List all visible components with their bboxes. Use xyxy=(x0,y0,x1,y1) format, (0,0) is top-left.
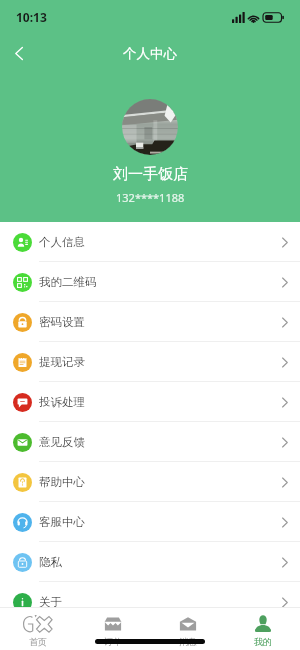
button[interactable]: 帮助中心 xyxy=(0,462,300,502)
staticText: 首页 xyxy=(29,636,47,647)
staticText: 我的 xyxy=(254,636,272,647)
staticText: 提现记录 xyxy=(39,355,85,369)
button[interactable]: 首页 xyxy=(0,607,75,650)
staticText: 关于 xyxy=(39,595,62,609)
button[interactable]: Avatar xyxy=(122,99,178,155)
staticText: 投诉处理 xyxy=(39,395,85,409)
button[interactable]: 我的二维码 xyxy=(0,262,300,302)
button[interactable]: 我的 xyxy=(225,607,300,650)
button[interactable]: 意见反馈 xyxy=(0,422,300,462)
button[interactable]: 投诉处理 xyxy=(0,382,300,422)
button[interactable]: 密码设置 xyxy=(0,302,300,342)
staticText: 个人信息 xyxy=(39,235,85,249)
button[interactable]: Back xyxy=(3,37,35,69)
staticText: 10:13 xyxy=(16,9,47,25)
button[interactable]: 消息 xyxy=(150,607,225,650)
staticText: 订单 xyxy=(104,636,122,647)
staticText: 隐私 xyxy=(39,555,62,569)
button[interactable]: 隐私 xyxy=(0,542,300,582)
staticText: 132****1188 xyxy=(116,190,185,205)
button[interactable]: 客服中心 xyxy=(0,502,300,542)
staticText: 密码设置 xyxy=(39,315,85,329)
staticText: 客服中心 xyxy=(39,515,85,529)
button[interactable]: 提现记录 xyxy=(0,342,300,382)
staticText: 帮助中心 xyxy=(39,475,85,489)
button[interactable]: 个人信息 xyxy=(0,222,300,262)
button[interactable]: 订单 xyxy=(75,607,150,650)
staticText: 刘一手饭店 xyxy=(113,165,188,184)
button[interactable]: 关于 xyxy=(0,582,300,622)
staticText: 我的二维码 xyxy=(39,275,97,289)
staticText: 意见反馈 xyxy=(39,435,85,449)
staticText: 消息 xyxy=(179,636,197,647)
staticText: 个人中心 xyxy=(123,45,177,62)
